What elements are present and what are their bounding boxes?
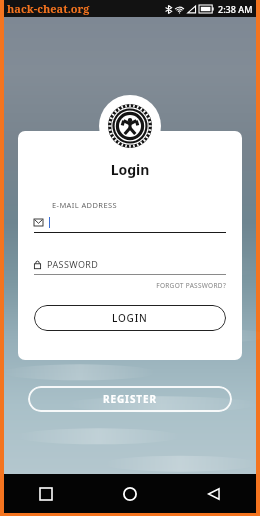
button[interactable]: Recent apps [4,474,88,513]
other: Password [34,260,41,269]
button[interactable]: REGISTER [28,386,232,412]
button[interactable]: Home [88,474,172,513]
button[interactable]: LOGIN [34,305,226,331]
staticText: LOGIN [112,311,148,325]
staticText: PASSWORD [47,258,99,270]
staticText: Login [34,160,226,179]
staticText: hack-cheat.org [7,1,90,16]
staticText: 2:38 AM [218,3,253,15]
button[interactable]: FORGOT PASSWORD? [34,281,226,290]
other: App logo [108,104,152,148]
staticText: E-MAIL ADDRESS [52,200,118,210]
button[interactable]: Back [172,474,256,513]
other: Email [34,219,43,226]
staticText: REGISTER [103,392,157,406]
